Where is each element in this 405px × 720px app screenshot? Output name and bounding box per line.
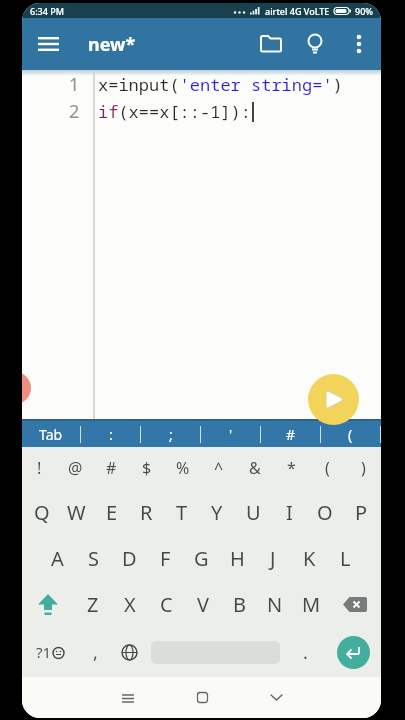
button[interactable]: D <box>111 535 147 581</box>
button[interactable]: . <box>285 627 325 677</box>
staticText: O <box>317 499 333 526</box>
button[interactable]: Y <box>199 489 235 535</box>
button[interactable]: ! <box>22 447 57 489</box>
button[interactable]: G <box>183 535 219 581</box>
button[interactable] <box>308 374 359 425</box>
staticText: C <box>160 591 173 618</box>
staticText: J <box>270 545 276 572</box>
button[interactable]: M <box>293 581 329 627</box>
staticText: L <box>340 545 351 572</box>
staticText: A <box>51 545 64 572</box>
button[interactable] <box>329 581 381 627</box>
button[interactable]: T <box>164 489 199 535</box>
staticText: ' <box>229 425 233 444</box>
staticText: Q <box>34 499 50 526</box>
button[interactable]: P <box>343 489 379 535</box>
staticText: 90% <box>355 5 373 17</box>
button[interactable]: J <box>255 535 291 581</box>
button[interactable] <box>22 18 74 70</box>
staticText: , <box>93 640 98 665</box>
staticText: & <box>249 457 261 479</box>
staticText: H <box>230 545 245 572</box>
staticText: 6:34 PM <box>30 5 64 17</box>
button[interactable]: & <box>237 447 273 489</box>
staticText: ( <box>325 457 330 479</box>
staticText: : <box>109 425 113 444</box>
staticText: K <box>303 545 316 572</box>
button[interactable]: I <box>271 489 307 535</box>
button[interactable]: ( <box>309 447 345 489</box>
button[interactable]: W <box>59 489 94 535</box>
button[interactable] <box>91 677 165 718</box>
staticText: T <box>176 499 188 526</box>
button[interactable] <box>325 627 381 677</box>
button[interactable]: * <box>273 447 309 489</box>
button[interactable] <box>239 677 313 718</box>
button[interactable]: L <box>327 535 363 581</box>
button[interactable]: ; <box>141 421 200 447</box>
button[interactable]: A <box>40 535 75 581</box>
button[interactable]: X <box>111 581 148 627</box>
button[interactable]: # <box>93 447 129 489</box>
staticText: U <box>246 499 261 526</box>
button[interactable]: E <box>94 489 129 535</box>
button[interactable] <box>165 677 239 718</box>
staticText: R <box>140 499 153 526</box>
button[interactable]: N <box>257 581 293 627</box>
button[interactable]: B <box>221 581 257 627</box>
button[interactable]: Z <box>74 581 111 627</box>
button[interactable]: R <box>129 489 164 535</box>
staticText: ; <box>169 425 173 444</box>
button[interactable]: % <box>165 447 201 489</box>
staticText: W <box>67 499 86 526</box>
staticText: D <box>122 545 137 572</box>
staticText: $ <box>142 457 152 479</box>
staticText: Tab <box>39 425 63 444</box>
button[interactable]: ^ <box>201 447 237 489</box>
button[interactable]: F <box>147 535 183 581</box>
staticText: G <box>194 545 209 572</box>
staticText: 1 <box>69 72 80 97</box>
button[interactable]: : <box>81 421 140 447</box>
staticText: P <box>355 499 368 526</box>
staticText: B <box>233 591 246 618</box>
button[interactable]: # <box>261 421 320 447</box>
button[interactable]: Tab <box>22 421 80 447</box>
staticText: ( <box>348 425 353 444</box>
button[interactable]: @ <box>57 447 93 489</box>
button[interactable] <box>293 22 337 66</box>
button[interactable]: ( <box>321 421 380 447</box>
button[interactable]: ' <box>201 421 260 447</box>
staticText: ?1 <box>36 642 52 662</box>
button[interactable]: K <box>291 535 327 581</box>
button[interactable]: C <box>148 581 185 627</box>
button[interactable] <box>337 22 381 66</box>
staticText: S <box>88 545 99 572</box>
staticText: * <box>287 457 296 479</box>
staticText: # <box>106 457 117 479</box>
button[interactable]: Q <box>24 489 59 535</box>
staticText: if(x==x[::-1]): <box>98 100 251 123</box>
staticText: @ <box>68 457 83 479</box>
staticText: ) <box>361 457 366 479</box>
button[interactable] <box>112 627 146 677</box>
staticText: Z <box>87 591 99 618</box>
staticText: X <box>124 591 136 618</box>
button[interactable]: ) <box>345 447 381 489</box>
staticText: E <box>106 499 118 526</box>
button[interactable]: U <box>235 489 271 535</box>
button[interactable]: , <box>78 627 112 677</box>
button[interactable]: ?1 <box>22 627 78 677</box>
button[interactable] <box>249 22 293 66</box>
staticText: M <box>302 591 321 618</box>
button[interactable]: V <box>185 581 221 627</box>
staticText: ^ <box>214 457 224 479</box>
staticText: ! <box>37 457 42 479</box>
button[interactable]: O <box>307 489 343 535</box>
staticText: F <box>160 545 171 572</box>
button[interactable]: $ <box>129 447 165 489</box>
button[interactable]: H <box>219 535 255 581</box>
button[interactable]: S <box>75 535 111 581</box>
button[interactable] <box>22 581 74 627</box>
